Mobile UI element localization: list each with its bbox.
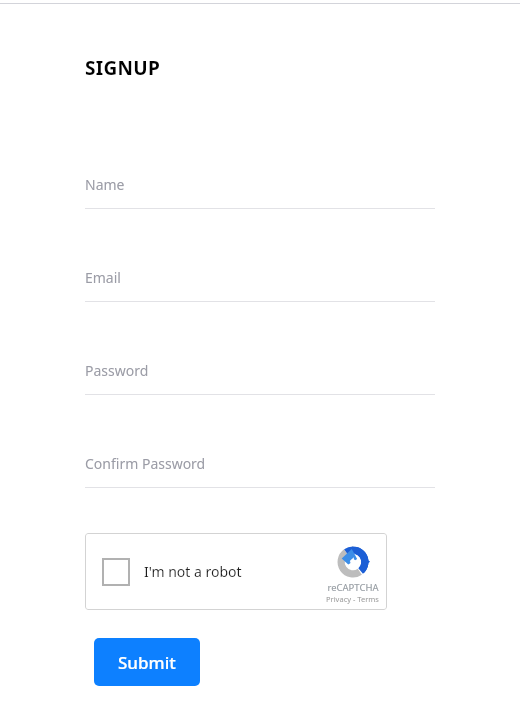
staticText: SIGNUP (85, 55, 161, 81)
staticText: Password (85, 361, 149, 380)
button[interactable]: Password (85, 361, 435, 395)
button[interactable]: Name (85, 175, 435, 209)
staticText: Confirm Password (85, 454, 206, 473)
staticText: reCAPTCHA (327, 581, 379, 594)
button[interactable]: Email (85, 268, 435, 302)
staticText: I'm not a robot (144, 562, 242, 581)
button[interactable]: Submit (94, 638, 200, 686)
other: I'm not a robot checkbox (102, 558, 130, 586)
button[interactable]: I'm not a robot checkbox (85, 533, 387, 610)
button[interactable]: Confirm Password (85, 454, 435, 488)
staticText: Privacy - Terms (326, 594, 379, 604)
staticText: Email (85, 268, 121, 287)
staticText: Name (85, 175, 125, 194)
staticText: Submit (118, 651, 176, 674)
